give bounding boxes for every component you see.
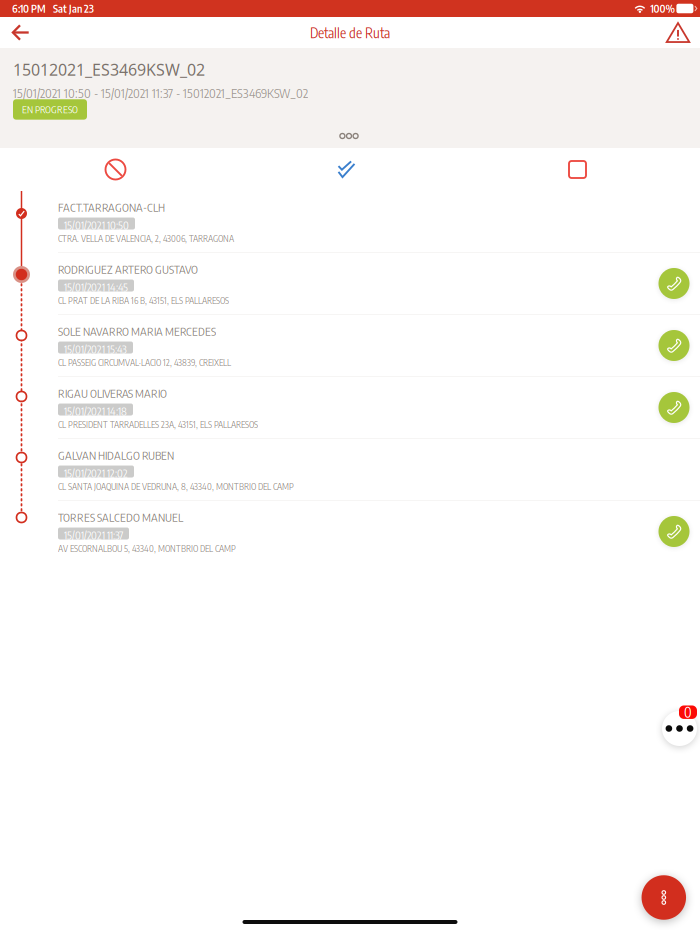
- staticText: AV ESCORNALBOU 5, 43340, MONTBRIO DEL CA…: [58, 543, 236, 554]
- button[interactable]: No entregados: [70, 148, 160, 191]
- staticText: FACT.TARRAGONA-CLH: [58, 200, 165, 214]
- staticText: 6:10 PM: [12, 2, 46, 15]
- staticText: 15/01/2021 15:43: [64, 342, 127, 356]
- staticText: CL PRAT DE LA RIBA 16 B, 43151, ELS PALL…: [58, 295, 229, 306]
- staticText: 15/01/2021 12:02: [64, 466, 128, 480]
- button[interactable]: Más opciones: [327, 124, 371, 148]
- staticText: CL PASSEIG CIRCUMVAL·LACIO 12, 43839, CR…: [58, 357, 231, 368]
- button[interactable]: Llamar: [656, 265, 692, 301]
- staticText: TORRES SALCEDO MANUEL: [58, 510, 183, 524]
- button[interactable]: Llamar: [656, 327, 692, 363]
- staticText: 15/01/2021 10:50: [64, 218, 129, 232]
- staticText: SOLE NAVARRO MARIA MERCEDES: [58, 324, 216, 338]
- button[interactable]: Atrás: [0, 17, 41, 48]
- button[interactable]: Incidencias: [656, 17, 700, 48]
- staticText: GALVAN HIDALGO RUBEN: [58, 448, 174, 462]
- button[interactable]: Llamar: [656, 513, 692, 549]
- button[interactable]: RIGAU OLIVERAS MARIO: [0, 377, 700, 438]
- button[interactable]: SOLE NAVARRO MARIA MERCEDES: [0, 315, 700, 376]
- staticText: EN PROGRESO: [22, 103, 78, 115]
- button[interactable]: Menú de ruta: [637, 870, 691, 924]
- staticText: 15012021_ES3469KSW_02: [13, 59, 205, 80]
- staticText: 15/01/2021 10:50 - 15/01/2021 11:37 - 15…: [13, 85, 308, 101]
- staticText: CL PRESIDENT TARRADELLES 23A, 43151, ELS…: [58, 419, 258, 430]
- button[interactable]: Llamar: [656, 389, 692, 425]
- staticText: 100%: [650, 2, 674, 15]
- staticText: RIGAU OLIVERAS MARIO: [58, 386, 167, 400]
- button[interactable]: RODRIGUEZ ARTERO GUSTAVO: [0, 253, 700, 314]
- button[interactable]: Entregados: [301, 148, 391, 191]
- button[interactable]: Acciones pendientes: [652, 701, 700, 755]
- staticText: 15/01/2021 14:18: [64, 404, 127, 418]
- staticText: Sat Jan 23: [53, 2, 94, 15]
- staticText: 15/01/2021 14:45: [64, 280, 128, 294]
- button[interactable]: GALVAN HIDALGO RUBEN: [0, 439, 700, 500]
- staticText: Detalle de Ruta: [310, 24, 390, 41]
- staticText: CTRA. VELLA DE VALENCIA, 2, 43006, TARRA…: [58, 233, 234, 244]
- button[interactable]: Pendientes: [532, 148, 622, 191]
- staticText: 0: [684, 703, 692, 721]
- button[interactable]: EN PROGRESO: [13, 99, 87, 120]
- staticText: CL SANTA JOAQUINA DE VEDRUNA, 8, 43340, …: [58, 481, 294, 492]
- staticText: RODRIGUEZ ARTERO GUSTAVO: [58, 262, 198, 276]
- staticText: 15/01/2021 11:37: [64, 528, 123, 542]
- button[interactable]: TORRES SALCEDO MANUEL: [0, 501, 700, 562]
- button[interactable]: FACT.TARRAGONA-CLH: [0, 191, 700, 252]
